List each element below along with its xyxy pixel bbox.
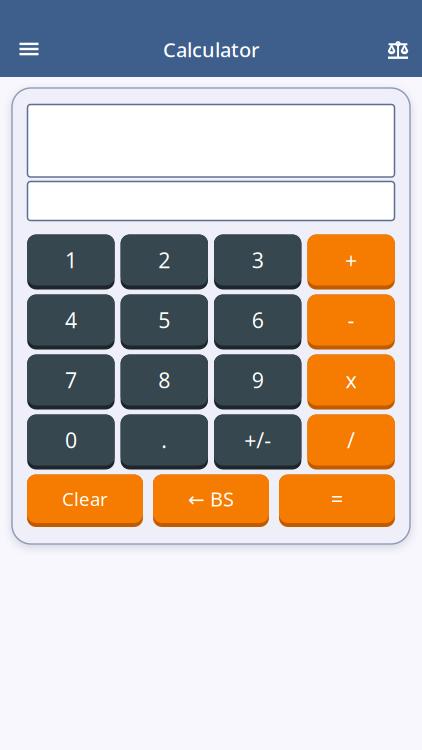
staticText: 7	[65, 366, 77, 394]
staticText: 3	[252, 246, 264, 274]
staticText: x	[346, 366, 357, 394]
staticText: .	[161, 426, 167, 454]
staticText: 8	[158, 366, 170, 394]
staticText: 5	[158, 306, 170, 334]
staticText: 0	[65, 426, 77, 454]
button[interactable]: Unit converter	[379, 27, 417, 71]
staticText: =	[331, 485, 343, 513]
staticText: 2	[158, 246, 170, 274]
button[interactable]: Clear	[27, 474, 143, 527]
staticText: 1	[65, 246, 77, 274]
staticText: +	[345, 246, 357, 274]
button[interactable]: 4	[27, 294, 115, 349]
button[interactable]: 8	[121, 354, 208, 409]
button[interactable]: 9	[214, 354, 301, 409]
staticText: 6	[252, 306, 264, 334]
staticText: +/-	[244, 426, 271, 454]
staticText: -	[348, 306, 355, 334]
button[interactable]: 2	[121, 234, 208, 289]
button[interactable]: -	[307, 294, 395, 349]
button[interactable]: 6	[214, 294, 301, 349]
staticText: Calculator	[163, 36, 259, 63]
button[interactable]: =	[279, 474, 395, 527]
button[interactable]: Menu	[10, 27, 48, 71]
button[interactable]: 1	[27, 234, 115, 289]
button[interactable]: /	[307, 414, 395, 469]
staticText: 9	[252, 366, 264, 394]
button[interactable]: .	[121, 414, 208, 469]
button[interactable]: +/-	[214, 414, 301, 469]
button[interactable]: 5	[121, 294, 208, 349]
button[interactable]: ← BS	[153, 474, 269, 527]
button[interactable]: +	[307, 234, 395, 289]
button[interactable]: x	[307, 354, 395, 409]
button[interactable]: 3	[214, 234, 301, 289]
staticText: Clear	[62, 486, 108, 511]
staticText: /	[347, 426, 355, 454]
button[interactable]: 7	[27, 354, 115, 409]
staticText: 4	[65, 306, 77, 334]
button[interactable]: 0	[27, 414, 115, 469]
staticText: ← BS	[188, 485, 234, 512]
